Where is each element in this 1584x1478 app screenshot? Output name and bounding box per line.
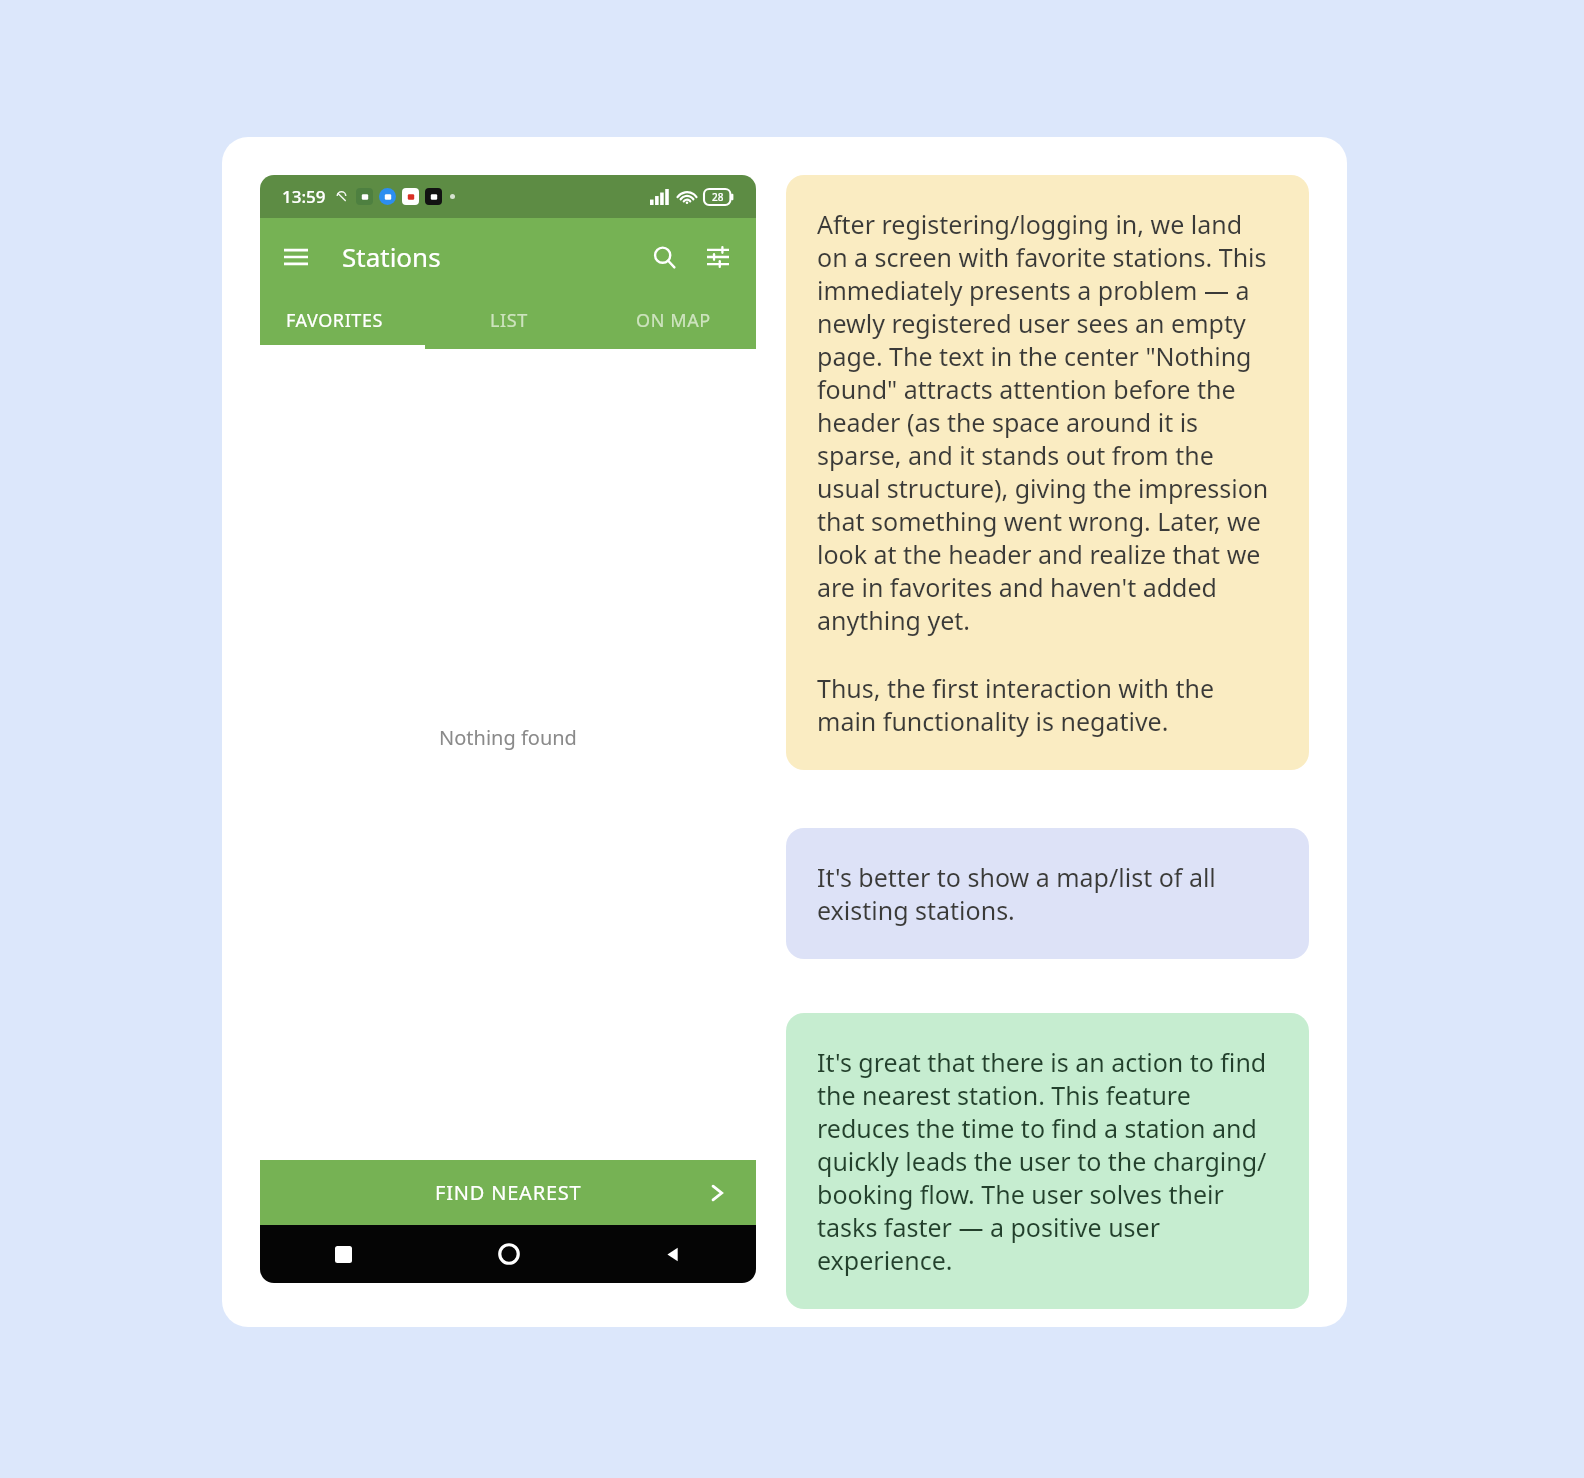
staticText: It's better to show a map/list of all ex… (817, 860, 1278, 927)
staticText: ON MAP (636, 308, 711, 333)
staticText: FIND NEAREST (435, 1179, 582, 1206)
staticText: 13:59 (282, 185, 326, 208)
button[interactable]: Back (591, 1225, 756, 1283)
staticText: Thus, the first interaction with the mai… (817, 671, 1278, 738)
button[interactable]: Open navigation menu (272, 233, 320, 281)
staticText: FAVORITES (286, 308, 384, 333)
button[interactable]: Home (426, 1225, 591, 1283)
button[interactable]: Search (640, 233, 688, 281)
staticText: Stations (342, 239, 441, 274)
button[interactable]: Filter settings (694, 233, 742, 281)
button[interactable]: It's better to show a map/list of all ex… (786, 828, 1309, 959)
button[interactable]: LIST (426, 295, 591, 345)
button[interactable]: ON MAP (591, 295, 756, 345)
button[interactable]: It's great that there is an action to fi… (786, 1013, 1309, 1309)
staticText: After registering/logging in, we land on… (817, 207, 1278, 637)
button[interactable]: After registering/logging in, we land on… (786, 175, 1309, 770)
staticText: Nothing found (439, 724, 577, 751)
staticText: It's great that there is an action to fi… (817, 1045, 1278, 1277)
button[interactable]: FIND NEAREST (260, 1160, 756, 1225)
staticText: 28 (712, 190, 724, 204)
button[interactable]: FAVORITES (260, 295, 426, 345)
button[interactable]: Recent apps (260, 1225, 426, 1283)
staticText: LIST (490, 308, 528, 333)
